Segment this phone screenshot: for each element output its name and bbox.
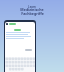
staticText: Learn <box>28 5 36 9</box>
staticText: Fachbegriffe <box>21 11 44 16</box>
staticText: Medizinische <box>20 7 44 12</box>
